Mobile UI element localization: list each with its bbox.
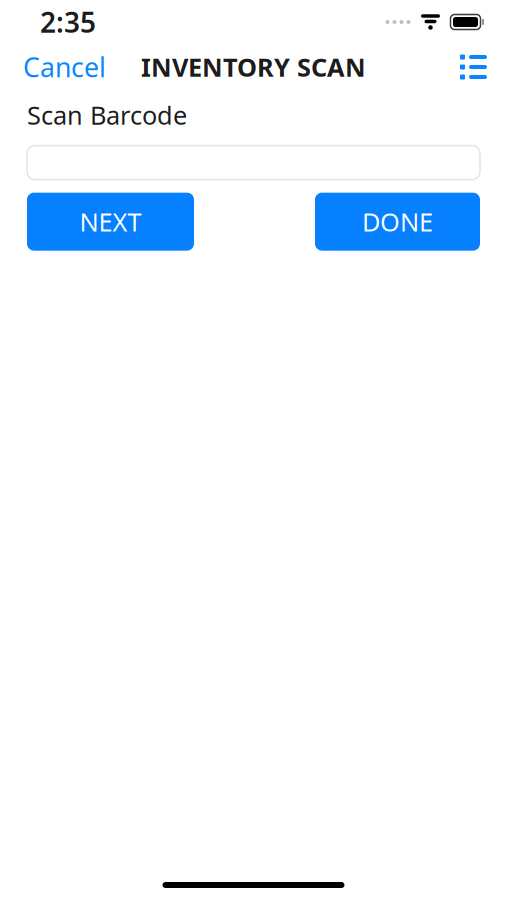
button[interactable]: List: [440, 48, 507, 85]
staticText: INVENTORY SCAN: [141, 50, 366, 84]
staticText: DONE: [362, 205, 433, 238]
staticText: Scan Barcode: [27, 98, 187, 132]
staticText: NEXT: [79, 205, 141, 238]
button[interactable]: Cancel: [0, 41, 129, 93]
staticText: Cancel: [23, 49, 106, 85]
button[interactable]: NEXT: [27, 193, 194, 251]
staticText: 2:35: [40, 3, 96, 41]
button[interactable]: DONE: [315, 193, 480, 251]
